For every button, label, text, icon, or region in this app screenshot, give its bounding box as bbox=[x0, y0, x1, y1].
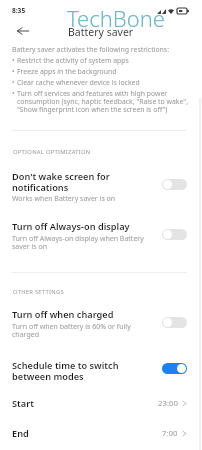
staticText: TechBone bbox=[67, 3, 165, 33]
button[interactable]: Turn off when charged bbox=[0, 303, 202, 344]
staticText: Works when Battery saver is on bbox=[12, 194, 149, 204]
staticText: Schedule time to switch between modes bbox=[12, 359, 160, 382]
staticText: • bbox=[12, 78, 17, 87]
staticText: OPTIONAL OPTIMIZATION bbox=[13, 148, 91, 156]
staticText: Battery saver activates the following re… bbox=[12, 45, 170, 54]
staticText: Clear cache whenever device is locked bbox=[17, 78, 140, 87]
staticText: Turn off when battery is 60% or fully ch… bbox=[12, 322, 149, 339]
button[interactable]: Back bbox=[11, 19, 34, 42]
button[interactable]: Turn off Always-on display bbox=[0, 215, 202, 256]
button[interactable]: End bbox=[0, 419, 202, 447]
button[interactable]: Toggle off bbox=[162, 317, 187, 328]
staticText: • bbox=[12, 67, 17, 76]
button[interactable]: Schedule time to switch between modes bbox=[0, 354, 202, 386]
staticText: OTHER SETTINGS bbox=[13, 288, 64, 296]
staticText: Turn off Always-on display bbox=[12, 220, 130, 233]
staticText: Battery saver bbox=[68, 25, 134, 39]
staticText: 8:35 bbox=[12, 6, 26, 15]
staticText: Restrict the activity of system apps bbox=[17, 56, 129, 65]
staticText: 7:00 bbox=[162, 428, 178, 439]
staticText: • bbox=[12, 89, 17, 98]
staticText: Turn off when charged bbox=[12, 308, 114, 321]
button[interactable]: Toggle off bbox=[162, 179, 187, 190]
button[interactable]: Don't wake screen for notifications bbox=[0, 165, 202, 206]
button[interactable]: Toggle off bbox=[162, 229, 187, 240]
staticText: Turn off services and features with high… bbox=[17, 89, 190, 114]
button[interactable]: Toggle on bbox=[162, 363, 187, 374]
staticText: Turn off Always-on display when Battery … bbox=[12, 234, 149, 251]
staticText: Freeze apps in the background bbox=[17, 67, 117, 76]
staticText: • bbox=[12, 56, 17, 65]
button[interactable]: Start bbox=[0, 389, 202, 417]
staticText: End bbox=[12, 427, 29, 440]
staticText: Start bbox=[12, 397, 34, 410]
staticText: Don't wake screen for notifications bbox=[12, 170, 160, 193]
staticText: 23:00 bbox=[158, 398, 178, 409]
